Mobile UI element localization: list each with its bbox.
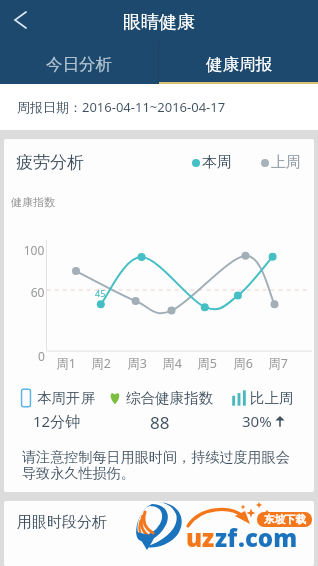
staticText: 30% <box>242 411 272 431</box>
staticText: 健康周报 <box>206 54 272 75</box>
staticText: 今日分析 <box>46 54 112 75</box>
staticText: 100 <box>22 242 46 258</box>
staticText: 东坡下载 <box>264 513 306 526</box>
staticText: 88 <box>150 411 170 432</box>
staticText: 比上周 <box>250 389 294 407</box>
staticText: 用眼时段分析 <box>17 513 107 532</box>
staticText: 0 <box>37 348 46 364</box>
staticText: 本周 <box>202 153 232 172</box>
staticText: 周4 <box>161 355 183 372</box>
staticText: 12分钟 <box>33 411 81 431</box>
button[interactable]: Back <box>0 0 40 40</box>
staticText: 45 <box>95 287 106 299</box>
staticText: 疲劳分析 <box>16 152 84 173</box>
staticText: .com <box>238 521 298 554</box>
staticText: 本周开屏 <box>37 389 95 407</box>
staticText: 60 <box>29 284 46 300</box>
staticText: 周1 <box>55 355 77 372</box>
staticText: 周3 <box>126 355 148 372</box>
staticText: 请注意控制每日用眼时间，持续过度用眼会 导致永久性损伤。 <box>22 448 290 482</box>
staticText: 周6 <box>232 355 254 372</box>
staticText: 上周 <box>271 153 301 172</box>
button[interactable]: 今日分析 <box>0 42 158 82</box>
staticText: 综合健康指数 <box>126 389 213 407</box>
staticText: 周2 <box>90 355 112 372</box>
staticText: 周7 <box>267 355 289 372</box>
button[interactable]: 健康周报 <box>159 42 318 82</box>
staticText: 周5 <box>196 355 218 372</box>
staticText: 眼睛健康 <box>123 11 195 34</box>
staticText: 周报日期：2016-04-11~2016-04-17 <box>17 98 226 116</box>
staticText: uz <box>186 521 215 554</box>
staticText: zf <box>215 521 238 554</box>
staticText: 健康指数 <box>11 195 55 209</box>
